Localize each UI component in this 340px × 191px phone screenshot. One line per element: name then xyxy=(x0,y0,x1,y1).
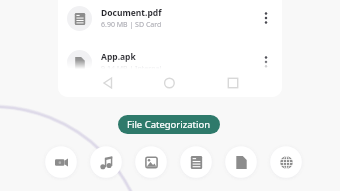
staticText: 6.90 MB | SD Card xyxy=(101,20,162,30)
button[interactable]: Images xyxy=(135,146,167,178)
button[interactable]: Videos xyxy=(45,146,77,178)
button[interactable]: Files xyxy=(225,146,257,178)
button[interactable]: Web xyxy=(270,146,302,178)
button[interactable]: File Categorization xyxy=(118,115,220,134)
staticText: 9.14 MB | Internal xyxy=(101,64,162,74)
staticText: File Categorization xyxy=(127,118,211,131)
button[interactable]: App.apk xyxy=(58,40,282,84)
button[interactable]: Document.pdf xyxy=(58,0,282,40)
button[interactable]: More options xyxy=(258,10,274,26)
staticText: Document.pdf xyxy=(101,7,162,19)
button[interactable]: Documents xyxy=(180,146,212,178)
button[interactable]: Music xyxy=(90,146,122,178)
staticText: App.apk xyxy=(101,51,136,63)
button[interactable]: More options xyxy=(258,54,274,70)
